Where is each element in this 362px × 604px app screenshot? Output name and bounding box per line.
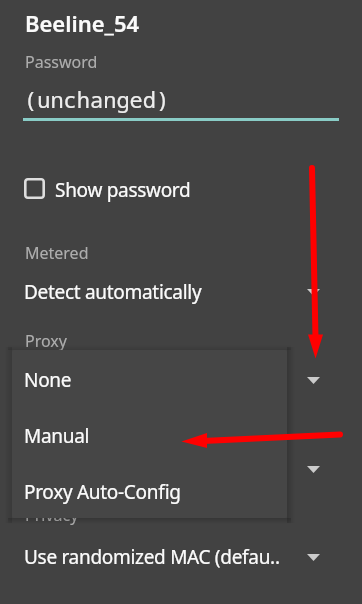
button[interactable]: Proxy Auto-Config — [12, 464, 287, 520]
staticText: Manual — [24, 423, 90, 449]
staticText: Detect automatically — [24, 279, 301, 305]
staticText: Proxy Auto-Config — [24, 479, 181, 505]
other: Expand dropdown — [307, 466, 320, 473]
staticText: Privacy — [25, 504, 79, 526]
staticText: None — [24, 367, 72, 393]
button[interactable]: DHCP — [0, 456, 362, 482]
staticText: IP settings — [25, 420, 105, 442]
staticText: Password — [25, 51, 98, 73]
staticText: Beeline_54 — [25, 8, 140, 38]
other: Expand dropdown — [307, 377, 320, 384]
other: Expand dropdown — [307, 289, 320, 296]
staticText: None — [24, 367, 301, 393]
button[interactable]: None — [12, 352, 287, 408]
staticText: Use randomized MAC (defau.. — [24, 544, 301, 570]
other: Show password checkbox — [24, 178, 45, 199]
staticText: Show password — [55, 177, 191, 203]
button[interactable]: Manual — [12, 408, 287, 464]
staticText: Proxy — [25, 330, 67, 352]
button[interactable]: None — [0, 367, 362, 393]
other: Expand dropdown — [307, 554, 320, 561]
button[interactable]: Show password checkbox — [0, 168, 362, 208]
button[interactable]: Detect automatically — [0, 279, 362, 305]
staticText: (unchanged) — [24, 84, 170, 114]
staticText: Metered — [25, 242, 89, 264]
button[interactable]: Use randomized MAC (defau.. — [0, 544, 362, 570]
